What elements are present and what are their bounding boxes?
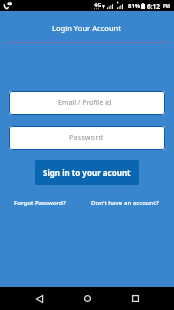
button[interactable]: Recent apps [124, 287, 146, 310]
button[interactable]: Sign in to your acount [35, 160, 139, 185]
button[interactable]: Don't have an account? [91, 198, 159, 206]
staticText: PM [163, 3, 171, 9]
staticText: Don't have an account? [91, 198, 159, 206]
button[interactable]: Email / Profile id [9, 91, 165, 115]
staticText: Email / Profile id [58, 98, 112, 108]
button[interactable]: Forgot Password? [14, 198, 66, 206]
staticText: 6:12 [147, 2, 160, 11]
button[interactable]: Home [76, 287, 98, 310]
staticText: Login Your Account [52, 23, 122, 33]
staticText: 4G [94, 1, 102, 8]
button[interactable]: Password [9, 126, 165, 150]
staticText: 81% [128, 2, 141, 10]
staticText: Forgot Password? [14, 198, 66, 206]
staticText: Sign in to your acount [43, 167, 131, 178]
button[interactable]: Back [28, 287, 50, 310]
staticText: Password [69, 133, 104, 143]
